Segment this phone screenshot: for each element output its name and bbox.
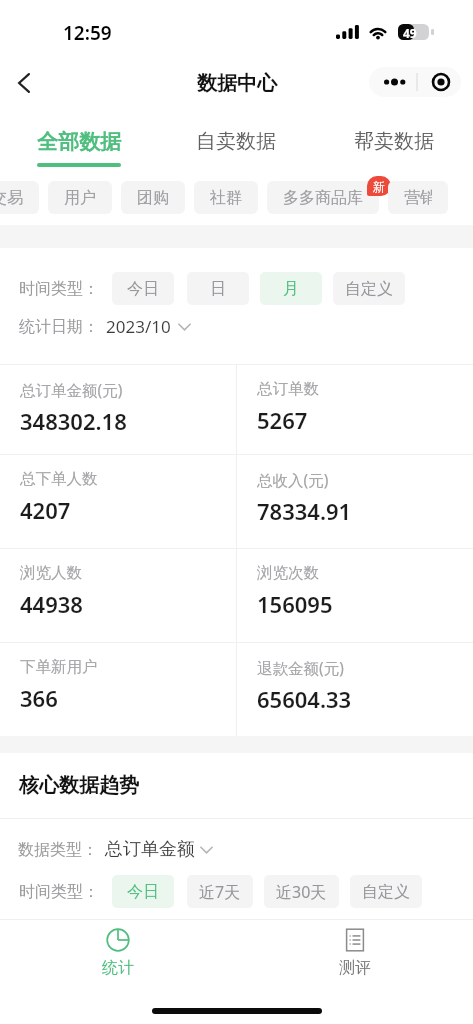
button[interactable]: 营销 [388, 181, 448, 214]
button[interactable]: 统计 [0, 920, 236, 1024]
button[interactable]: 全部数据 [0, 112, 157, 172]
button[interactable]: 总订单金额(元) [0, 365, 236, 454]
staticText: 总下单人数 [20, 469, 98, 489]
staticText: 总订单金额 [105, 838, 195, 861]
staticText: 日 [210, 279, 226, 299]
button[interactable]: 自定义 [350, 875, 422, 908]
staticText: 348302.18 [20, 406, 127, 436]
button[interactable]: 浏览人数 [0, 549, 236, 642]
button[interactable]: 多多商品库 [267, 181, 379, 214]
staticText: 2023/10 [106, 315, 171, 338]
button[interactable]: 团购 [121, 181, 185, 214]
staticText: 自定义 [345, 279, 393, 299]
staticText: 44938 [20, 589, 83, 619]
button[interactable]: 总订单金额 [105, 838, 213, 861]
button[interactable]: 退款金额(元) [237, 643, 473, 736]
button[interactable]: 总收入(元) [237, 455, 473, 548]
staticText: 自定义 [362, 882, 410, 902]
button[interactable]: 总下单人数 [0, 455, 236, 548]
button[interactable]: 浏览次数 [237, 549, 473, 642]
staticText: 65604.33 [257, 684, 352, 714]
staticText: 全部数据 [37, 129, 121, 155]
staticText: 12:59 [63, 20, 112, 46]
button[interactable]: 社群 [194, 181, 258, 214]
staticText: 用户 [64, 188, 96, 208]
button[interactable]: 自定义 [333, 272, 405, 305]
button[interactable]: 下单新用户 [0, 643, 236, 736]
staticText: 总订单数 [257, 379, 319, 399]
staticText: 78334.91 [257, 496, 352, 526]
button[interactable]: 用户 [48, 181, 112, 214]
staticText: 近7天 [199, 881, 241, 903]
button[interactable]: 今日 [112, 875, 174, 908]
button[interactable]: 帮卖数据 [315, 112, 473, 172]
staticText: 月 [283, 279, 299, 299]
staticText: 数据类型： [18, 840, 98, 860]
button[interactable]: 近7天 [187, 875, 253, 908]
staticText: 数据中心 [197, 71, 277, 96]
button[interactable]: 总订单数 [237, 365, 473, 454]
staticText: 今日 [127, 279, 159, 299]
staticText: 总收入(元) [257, 469, 329, 490]
button[interactable]: 日 [187, 272, 249, 305]
staticText: 核心数据趋势 [19, 773, 139, 798]
staticText: 时间类型： [19, 279, 99, 299]
button[interactable]: Back [4, 63, 44, 103]
staticText: 时间类型： [19, 882, 99, 902]
staticText: 团购 [137, 188, 169, 208]
button[interactable]: 自卖数据 [157, 112, 315, 172]
staticText: 总订单金额(元) [20, 379, 123, 400]
staticText: 帮卖数据 [354, 129, 434, 154]
button[interactable]: 交易 [0, 181, 39, 214]
staticText: 近30天 [276, 881, 327, 903]
staticText: 交易 [0, 188, 23, 208]
button[interactable]: 近30天 [264, 875, 339, 908]
button[interactable]: 测评 [236, 920, 473, 1024]
staticText: 统计 [102, 958, 134, 978]
staticText: 新 [373, 179, 385, 194]
staticText: 多多商品库 [283, 188, 363, 208]
button[interactable]: 2023/10 [106, 315, 191, 338]
staticText: 366 [20, 683, 58, 713]
staticText: 浏览人数 [20, 563, 82, 583]
staticText: 自卖数据 [196, 129, 276, 154]
button[interactable]: More options [369, 67, 461, 97]
button[interactable]: 月 [260, 272, 322, 305]
staticText: 156095 [257, 589, 333, 619]
staticText: 测评 [339, 958, 371, 978]
button[interactable]: 今日 [112, 272, 174, 305]
staticText: 下单新用户 [20, 657, 98, 677]
staticText: 4207 [20, 495, 71, 525]
staticText: 今日 [127, 882, 159, 902]
staticText: 浏览次数 [257, 563, 319, 583]
staticText: 5267 [257, 405, 308, 435]
staticText: 统计日期： [19, 317, 99, 337]
staticText: 49 [403, 25, 417, 41]
staticText: 退款金额(元) [257, 657, 344, 678]
staticText: 社群 [210, 188, 242, 208]
staticText: 营销 [404, 188, 432, 208]
